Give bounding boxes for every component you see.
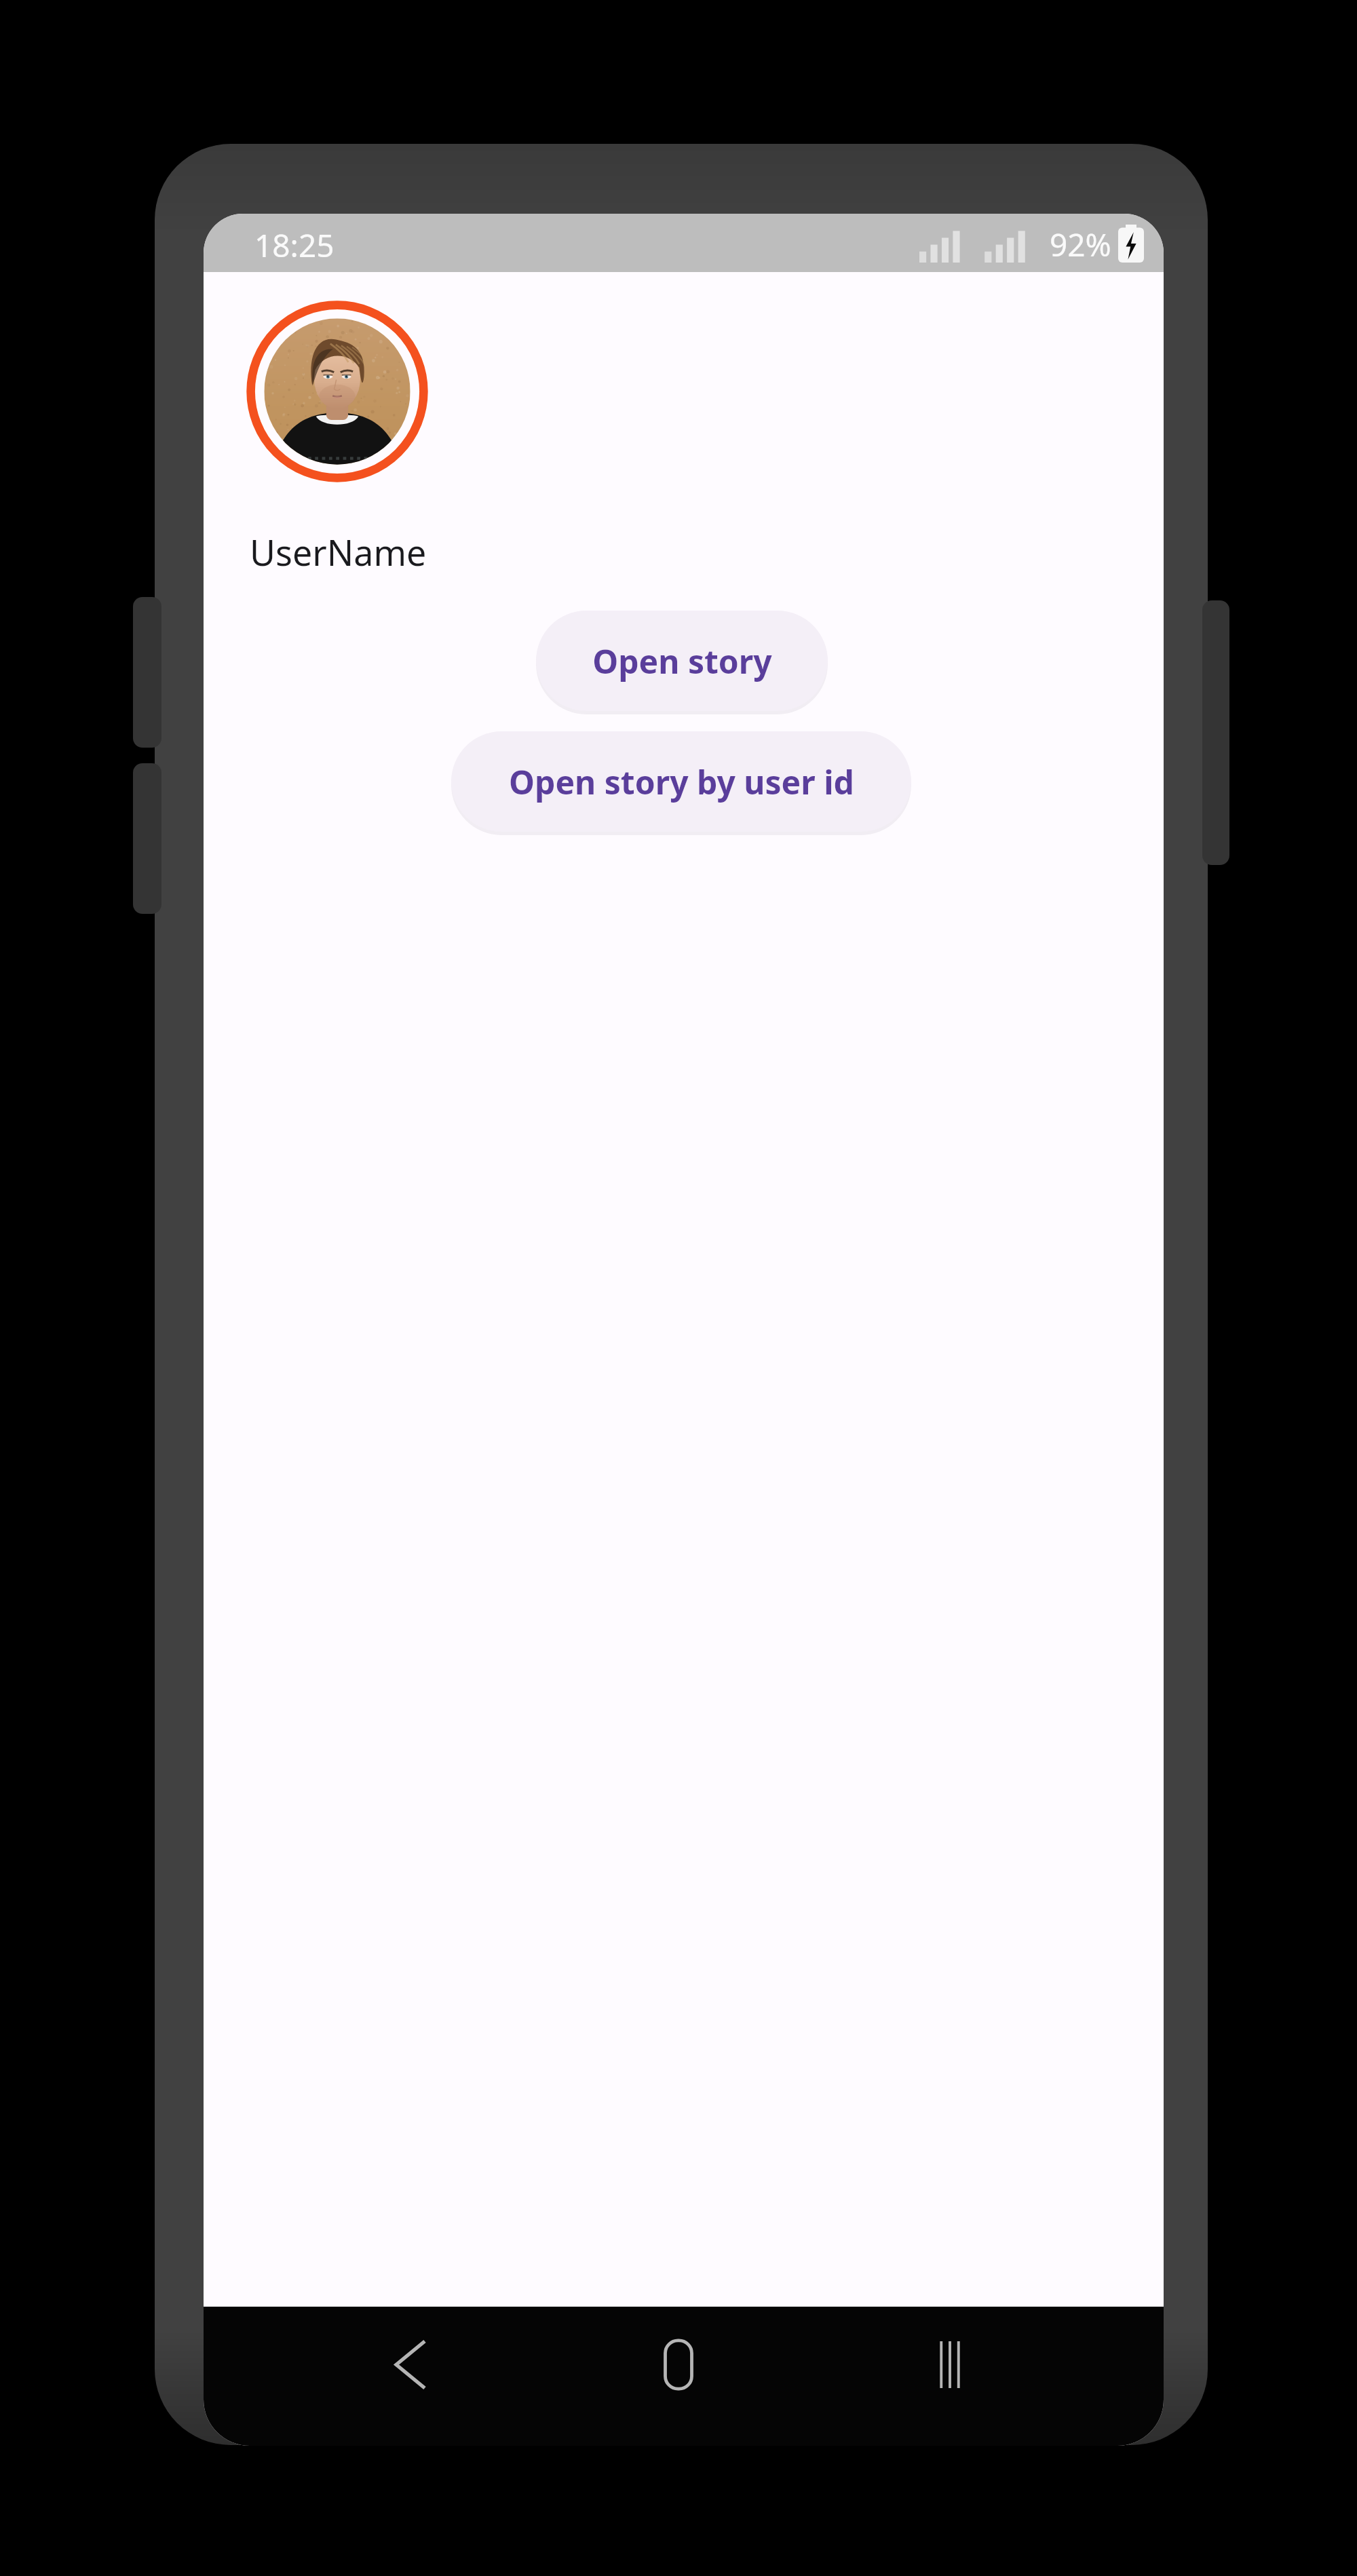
staticText: UserName [250,528,427,576]
staticText: 18:25 [254,224,335,267]
staticText: Open story by user id [509,760,854,804]
button[interactable]: Open story by user id [451,731,911,832]
button[interactable]: Open story [536,611,828,711]
button[interactable]: Open UserName story [242,296,432,486]
button[interactable]: Recent apps [899,2326,1001,2404]
button[interactable]: Home [628,2326,729,2404]
staticText: Open story [592,639,772,683]
button[interactable]: Back [360,2326,461,2404]
staticText: 92% [1050,223,1111,266]
